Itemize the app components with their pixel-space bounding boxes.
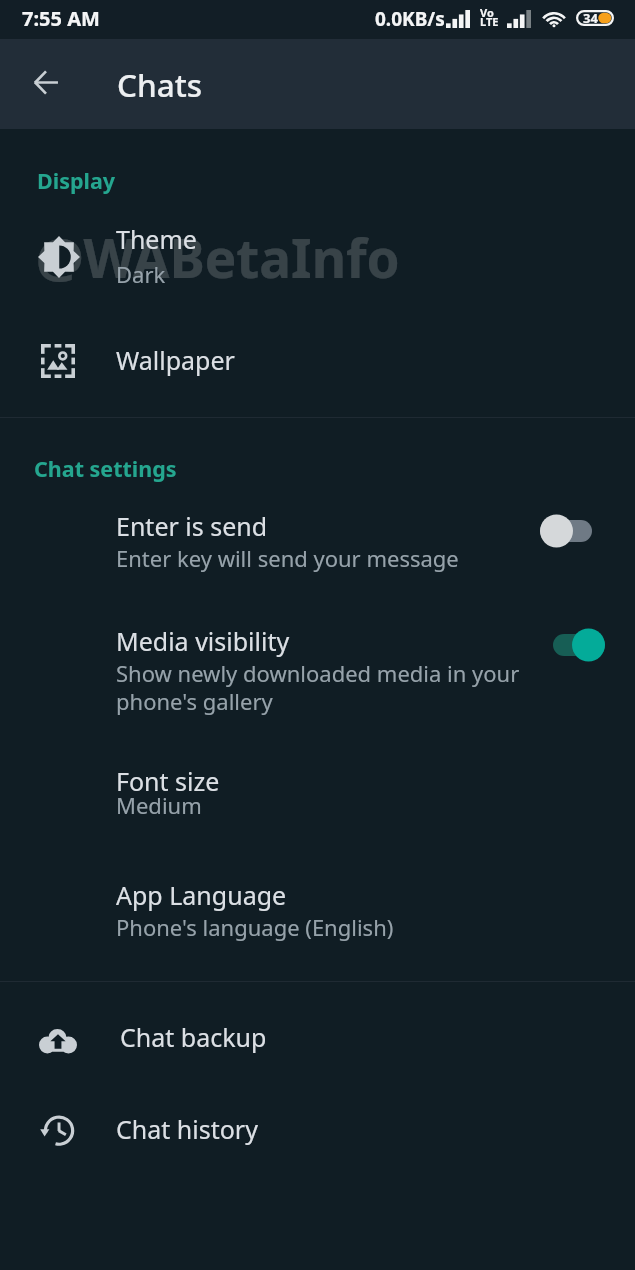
button[interactable]: App Language (0, 862, 635, 962)
staticText: 34 (583, 9, 598, 25)
staticText: Chats (117, 63, 203, 106)
staticText: Vo (480, 5, 494, 20)
staticText: Chat settings (34, 454, 177, 483)
staticText: @WABetaInfo (36, 221, 400, 293)
button[interactable]: Enter is send, off (523, 503, 609, 559)
staticText: 7:55 AM (22, 5, 100, 32)
button[interactable]: Media visibility (0, 608, 635, 738)
staticText: 0.0KB/s (375, 6, 445, 32)
staticText: Chat backup (120, 1020, 267, 1054)
staticText: phone's gallery (116, 686, 273, 716)
staticText: Wallpaper (116, 343, 235, 377)
button[interactable]: Font size (0, 748, 635, 846)
button[interactable]: Enter is send (0, 492, 635, 594)
button[interactable]: Media visibility, on (536, 617, 622, 673)
staticText: Enter is send (116, 509, 268, 543)
staticText: LTE (480, 14, 499, 29)
button[interactable]: Chat backup (0, 988, 635, 1074)
button[interactable]: Theme (0, 132, 635, 218)
button[interactable]: Wallpaper (0, 320, 635, 404)
button[interactable]: Chat history (0, 1080, 635, 1166)
staticText: Phone's language (English) (116, 912, 394, 942)
staticText: Medium (116, 790, 202, 820)
staticText: Theme (116, 222, 197, 256)
button[interactable]: Back (17, 53, 75, 111)
staticText: Chat history (116, 1112, 258, 1146)
staticText: Font size (116, 764, 220, 798)
staticText: Dark (116, 259, 166, 289)
staticText: Media visibility (116, 624, 290, 658)
staticText: Display (37, 166, 116, 195)
staticText: Enter key will send your message (116, 543, 459, 573)
staticText: App Language (116, 878, 287, 912)
staticText: Show newly downloaded media in your (116, 658, 520, 688)
